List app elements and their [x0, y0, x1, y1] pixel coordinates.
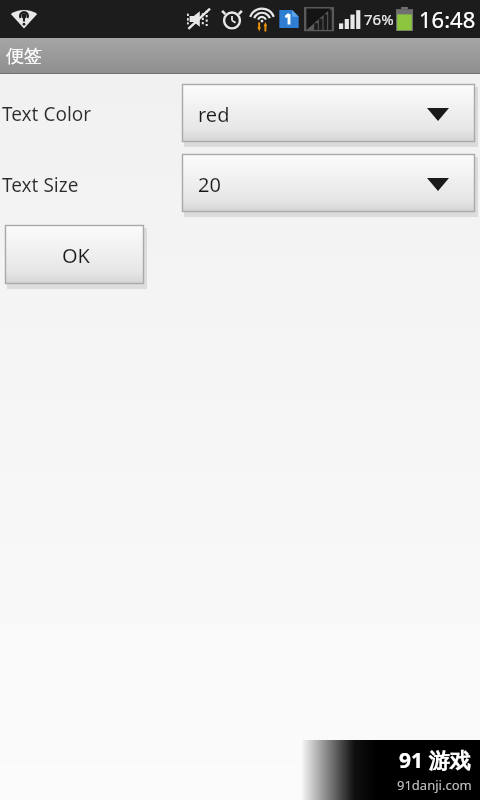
staticText: 便签: [6, 45, 42, 68]
button[interactable]: 20: [182, 154, 477, 215]
staticText: 91danji.com: [397, 776, 472, 794]
button[interactable]: OK: [5, 225, 146, 287]
button[interactable]: red: [182, 84, 477, 145]
staticText: Text Color: [2, 101, 92, 127]
staticText: Text Size: [2, 172, 79, 198]
staticText: red: [198, 101, 230, 128]
staticText: 76%: [364, 9, 394, 29]
staticText: 91 游戏: [399, 746, 471, 775]
staticText: 16:48: [419, 4, 476, 34]
staticText: OK: [62, 242, 90, 269]
staticText: 20: [198, 171, 221, 198]
